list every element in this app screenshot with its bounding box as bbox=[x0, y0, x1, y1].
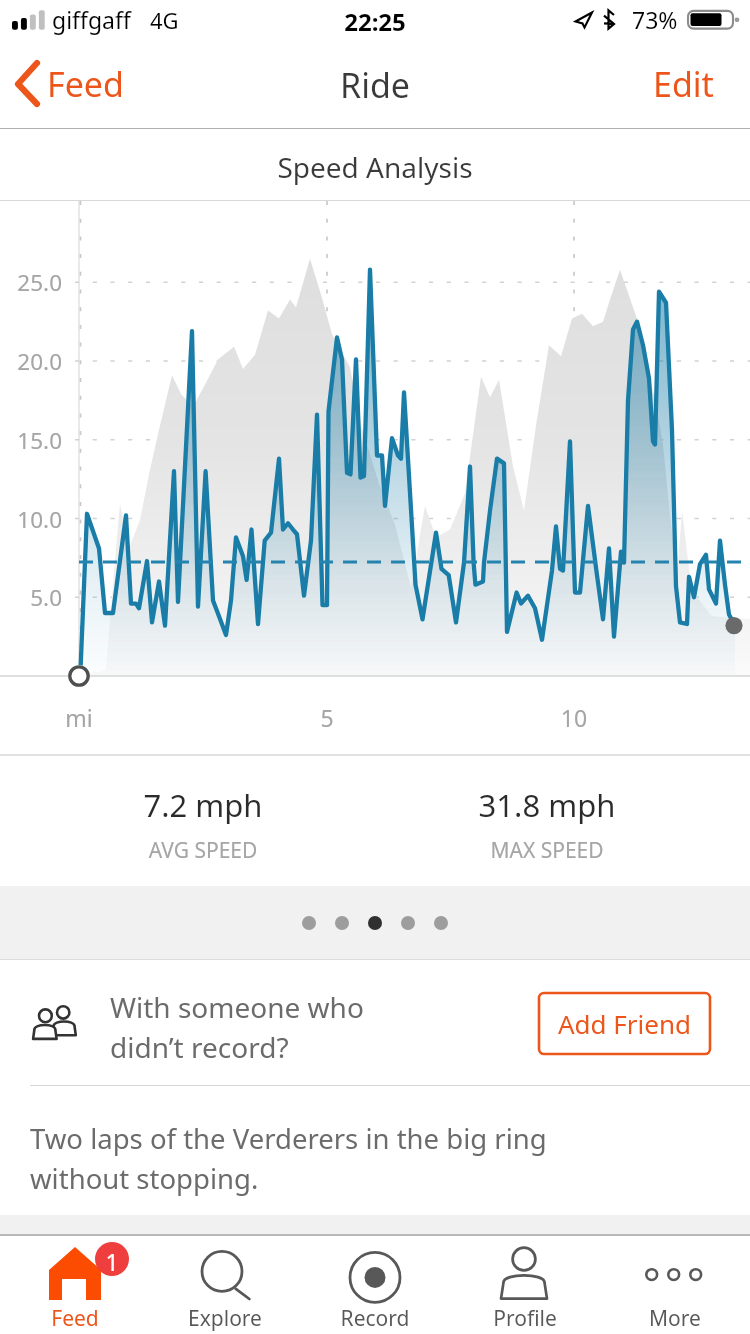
staticText: 31.8 mph bbox=[397, 784, 697, 826]
staticText: 5.0 bbox=[0, 582, 62, 613]
button[interactable]: Add Friend bbox=[539, 993, 710, 1054]
button[interactable]: Explore tab bbox=[150, 1236, 300, 1334]
staticText: 22:25 bbox=[0, 5, 750, 38]
staticText: giffgaff bbox=[52, 4, 131, 35]
staticText: Edit bbox=[653, 61, 714, 107]
staticText: Two laps of the Verderers in the big rin… bbox=[30, 1120, 547, 1197]
staticText: 4G bbox=[150, 5, 179, 35]
staticText: 25.0 bbox=[0, 267, 62, 298]
staticText: 7.2 mph bbox=[53, 784, 353, 826]
staticText: 1 bbox=[95, 1246, 129, 1277]
staticText: Feed bbox=[47, 61, 124, 107]
staticText: Feed bbox=[0, 1304, 150, 1333]
staticText: Record bbox=[300, 1304, 450, 1333]
staticText: MAX SPEED bbox=[397, 836, 697, 865]
staticText: mi bbox=[29, 702, 129, 733]
button[interactable]: Feed bbox=[0, 40, 136, 128]
staticText: Speed Analysis bbox=[0, 148, 750, 186]
staticText: AVG SPEED bbox=[53, 836, 353, 865]
button[interactable]: Record tab bbox=[300, 1236, 450, 1334]
staticText: 15.0 bbox=[0, 425, 62, 456]
staticText: Profile bbox=[450, 1304, 600, 1333]
staticText: 20.0 bbox=[0, 346, 62, 377]
button[interactable]: More tab bbox=[600, 1236, 750, 1334]
staticText: 10.0 bbox=[0, 504, 62, 535]
staticText: 5 bbox=[277, 702, 377, 733]
button[interactable]: With someone who didn’t record? bbox=[0, 960, 750, 1086]
staticText: 73% bbox=[632, 4, 678, 35]
staticText: With someone who didn’t record? bbox=[110, 988, 364, 1067]
button[interactable]: Edit bbox=[628, 40, 738, 128]
staticText: Explore bbox=[150, 1304, 300, 1333]
staticText: 10 bbox=[524, 702, 624, 733]
staticText: Add Friend bbox=[558, 1006, 692, 1041]
staticText: More bbox=[600, 1304, 750, 1333]
button[interactable]: Feed tab bbox=[0, 1236, 150, 1334]
button[interactable]: Profile tab bbox=[450, 1236, 600, 1334]
staticText: Ride bbox=[0, 62, 750, 108]
